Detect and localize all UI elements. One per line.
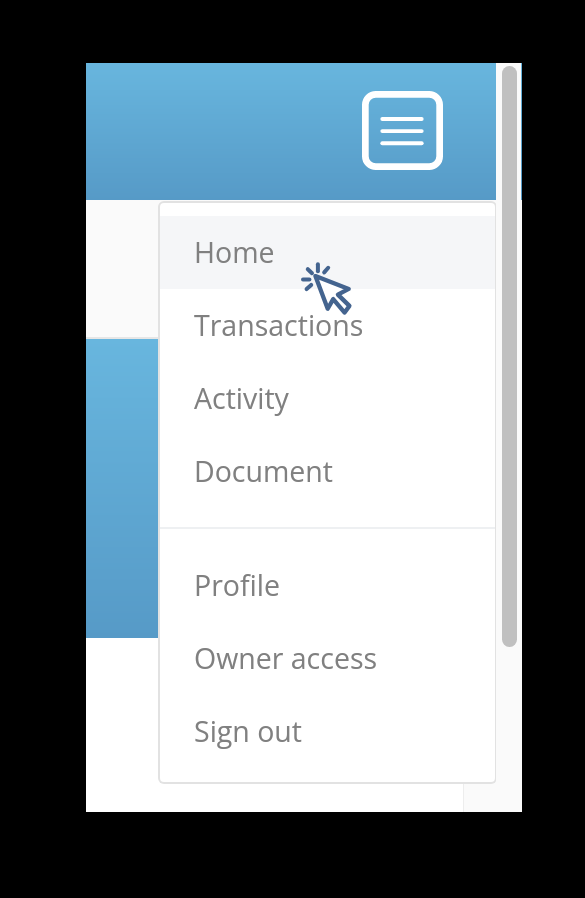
staticText: Activity (194, 379, 289, 418)
button[interactable]: Document (160, 435, 495, 508)
staticText: Home (194, 233, 275, 272)
staticText: Sign out (194, 712, 302, 751)
staticText: Document (194, 452, 333, 491)
button[interactable]: Home (160, 216, 495, 289)
button[interactable]: Open navigation menu (362, 91, 443, 170)
button[interactable]: Profile (160, 549, 495, 622)
button[interactable]: Owner access (160, 622, 495, 695)
button[interactable]: Transactions (160, 289, 495, 362)
staticText: Transactions (194, 306, 364, 345)
button[interactable]: Sign out (160, 695, 495, 768)
staticText: Owner access (194, 639, 378, 678)
button[interactable]: Activity (160, 362, 495, 435)
staticText: Profile (194, 566, 280, 605)
